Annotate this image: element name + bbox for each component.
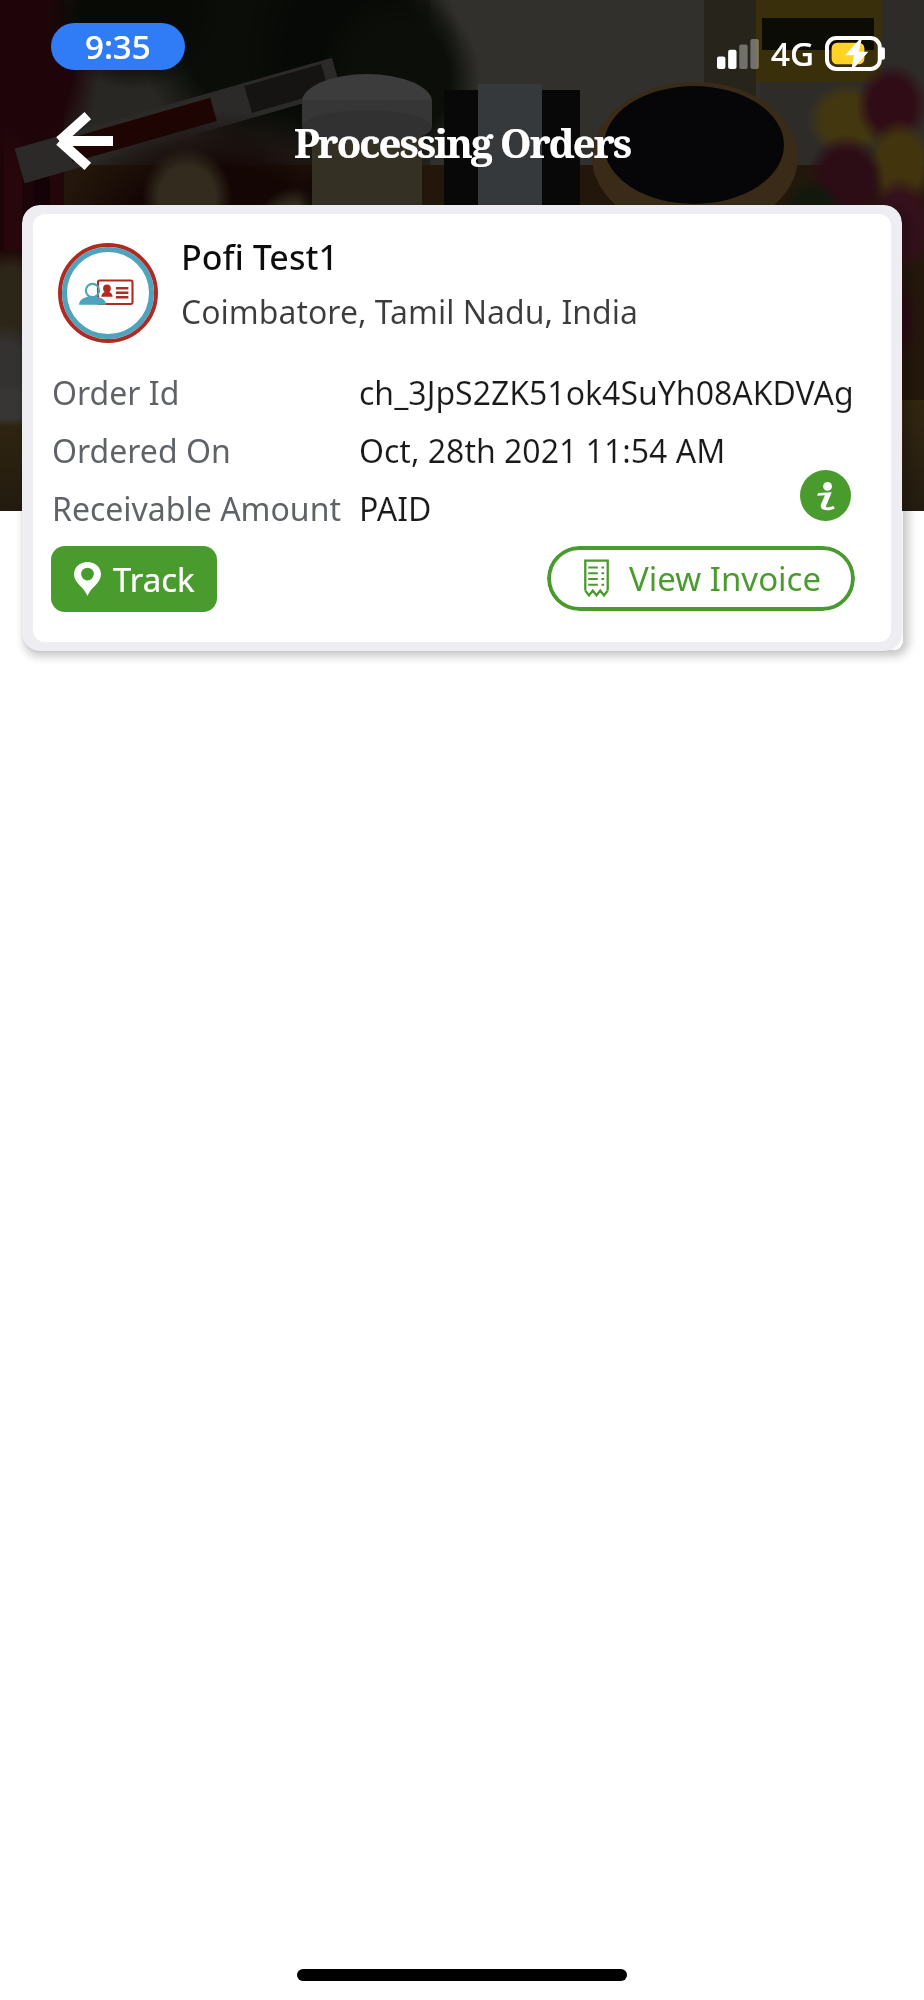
button[interactable]: Info [800, 470, 851, 521]
staticText: PAID [359, 487, 432, 531]
staticText: Pofi Test1 [181, 234, 338, 280]
button[interactable]: Back [45, 101, 125, 181]
staticText: 9:35 [85, 24, 151, 69]
staticText: View Invoice [629, 556, 822, 601]
staticText: Coimbatore, Tamil Nadu, India [181, 290, 638, 334]
staticText: ch_3JpS2ZK51ok4SuYh08AKDVAg [359, 371, 854, 415]
button[interactable]: View Invoice [547, 546, 855, 611]
staticText: Track [113, 557, 195, 602]
staticText: Order Id [52, 371, 180, 415]
staticText: Ordered On [52, 429, 231, 473]
staticText: Receivable Amount [52, 487, 341, 531]
staticText: Oct, 28th 2021 11:54 AM [359, 429, 726, 473]
staticText: Processing Orders [294, 115, 631, 169]
button[interactable]: Track [51, 546, 217, 612]
staticText: 4G [771, 31, 814, 76]
